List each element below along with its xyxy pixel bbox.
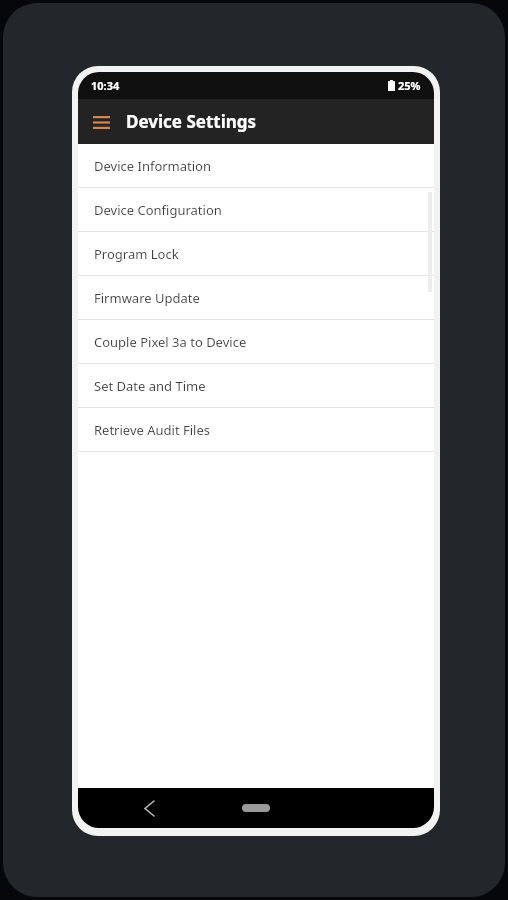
button[interactable]: Firmware Update bbox=[78, 276, 434, 320]
button[interactable]: Home bbox=[239, 800, 273, 816]
staticText: Device Information bbox=[94, 157, 212, 175]
button[interactable]: Open navigation menu bbox=[85, 106, 117, 138]
staticText: Program Lock bbox=[94, 245, 179, 263]
staticText: 10:34 bbox=[91, 78, 120, 93]
staticText: Device Settings bbox=[126, 110, 257, 133]
staticText: Set Date and Time bbox=[94, 377, 206, 395]
button[interactable]: Device Configuration bbox=[78, 188, 434, 232]
button[interactable]: Device Information bbox=[78, 144, 434, 188]
staticText: Firmware Update bbox=[94, 289, 200, 307]
staticText: 25% bbox=[398, 78, 421, 93]
button[interactable]: Set Date and Time bbox=[78, 364, 434, 408]
button[interactable]: Back bbox=[134, 793, 164, 823]
button[interactable]: Program Lock bbox=[78, 232, 434, 276]
staticText: Retrieve Audit Files bbox=[94, 421, 210, 439]
staticText: Device Configuration bbox=[94, 201, 222, 219]
staticText: Couple Pixel 3a to Device bbox=[94, 333, 247, 351]
button[interactable]: Couple Pixel 3a to Device bbox=[78, 320, 434, 364]
button[interactable]: Retrieve Audit Files bbox=[78, 408, 434, 452]
